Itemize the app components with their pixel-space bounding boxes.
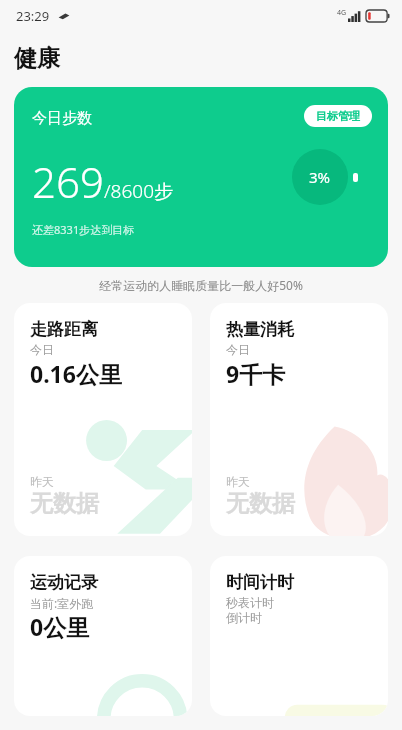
staticText: 0公里 <box>30 611 90 642</box>
staticText: 走路距离 <box>30 319 98 340</box>
staticText: 3% <box>309 167 331 187</box>
staticText: 秒表计时 <box>226 595 274 610</box>
staticText: 0.16公里 <box>30 358 122 389</box>
button[interactable]: 热量消耗 <box>210 303 388 536</box>
staticText: 今日步数 <box>32 109 92 128</box>
staticText: 昨天 <box>226 474 250 489</box>
staticText: 今日 <box>30 342 54 357</box>
button[interactable]: 走路距离 <box>14 303 192 536</box>
button[interactable]: 运动记录 <box>14 556 192 716</box>
staticText: 还差8331步达到目标 <box>32 222 135 237</box>
button[interactable]: 今日步数 <box>14 87 388 267</box>
staticText: 时间计时 <box>226 572 294 593</box>
staticText: 9千卡 <box>226 358 286 389</box>
staticText: 健康 <box>14 44 60 73</box>
staticText: 今日 <box>226 342 250 357</box>
staticText: 无数据 <box>226 489 295 518</box>
staticText: 目标管理 <box>316 109 360 123</box>
staticText: 无数据 <box>30 489 99 518</box>
staticText: /8600步 <box>104 178 173 204</box>
staticText: 23:29 <box>16 7 50 25</box>
button[interactable]: 时间计时 <box>210 556 388 716</box>
staticText: 倒计时 <box>226 610 262 625</box>
staticText: 运动记录 <box>30 572 98 593</box>
staticText: 269 <box>32 153 104 210</box>
staticText: 昨天 <box>30 474 54 489</box>
staticText: 热量消耗 <box>226 319 294 340</box>
staticText: 当前:室外跑 <box>30 595 94 611</box>
staticText: 经常运动的人睡眠质量比一般人好50% <box>0 277 402 293</box>
staticText: 4G <box>337 8 347 18</box>
button[interactable]: 目标管理 <box>304 105 372 127</box>
